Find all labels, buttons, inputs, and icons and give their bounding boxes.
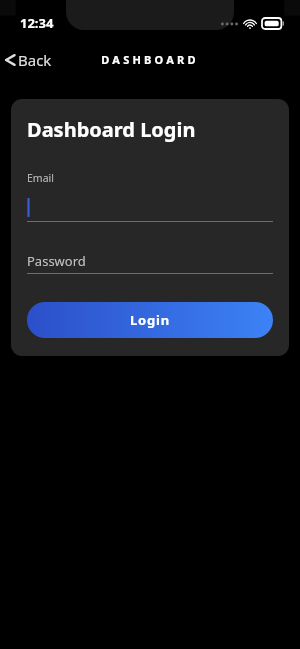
button[interactable]: Login	[27, 302, 273, 338]
staticText: Dashboard Login	[27, 116, 196, 143]
staticText: DASHBOARD	[101, 52, 199, 67]
staticText: Email	[27, 171, 54, 185]
staticText: Login	[130, 311, 170, 329]
button[interactable]	[27, 194, 273, 221]
button[interactable]: Back	[0, 46, 60, 74]
other: Back	[4, 51, 16, 69]
staticText: Back	[18, 50, 52, 70]
button[interactable]: Password	[27, 249, 273, 273]
staticText: Password	[27, 252, 86, 270]
staticText: 12:34	[20, 14, 54, 32]
